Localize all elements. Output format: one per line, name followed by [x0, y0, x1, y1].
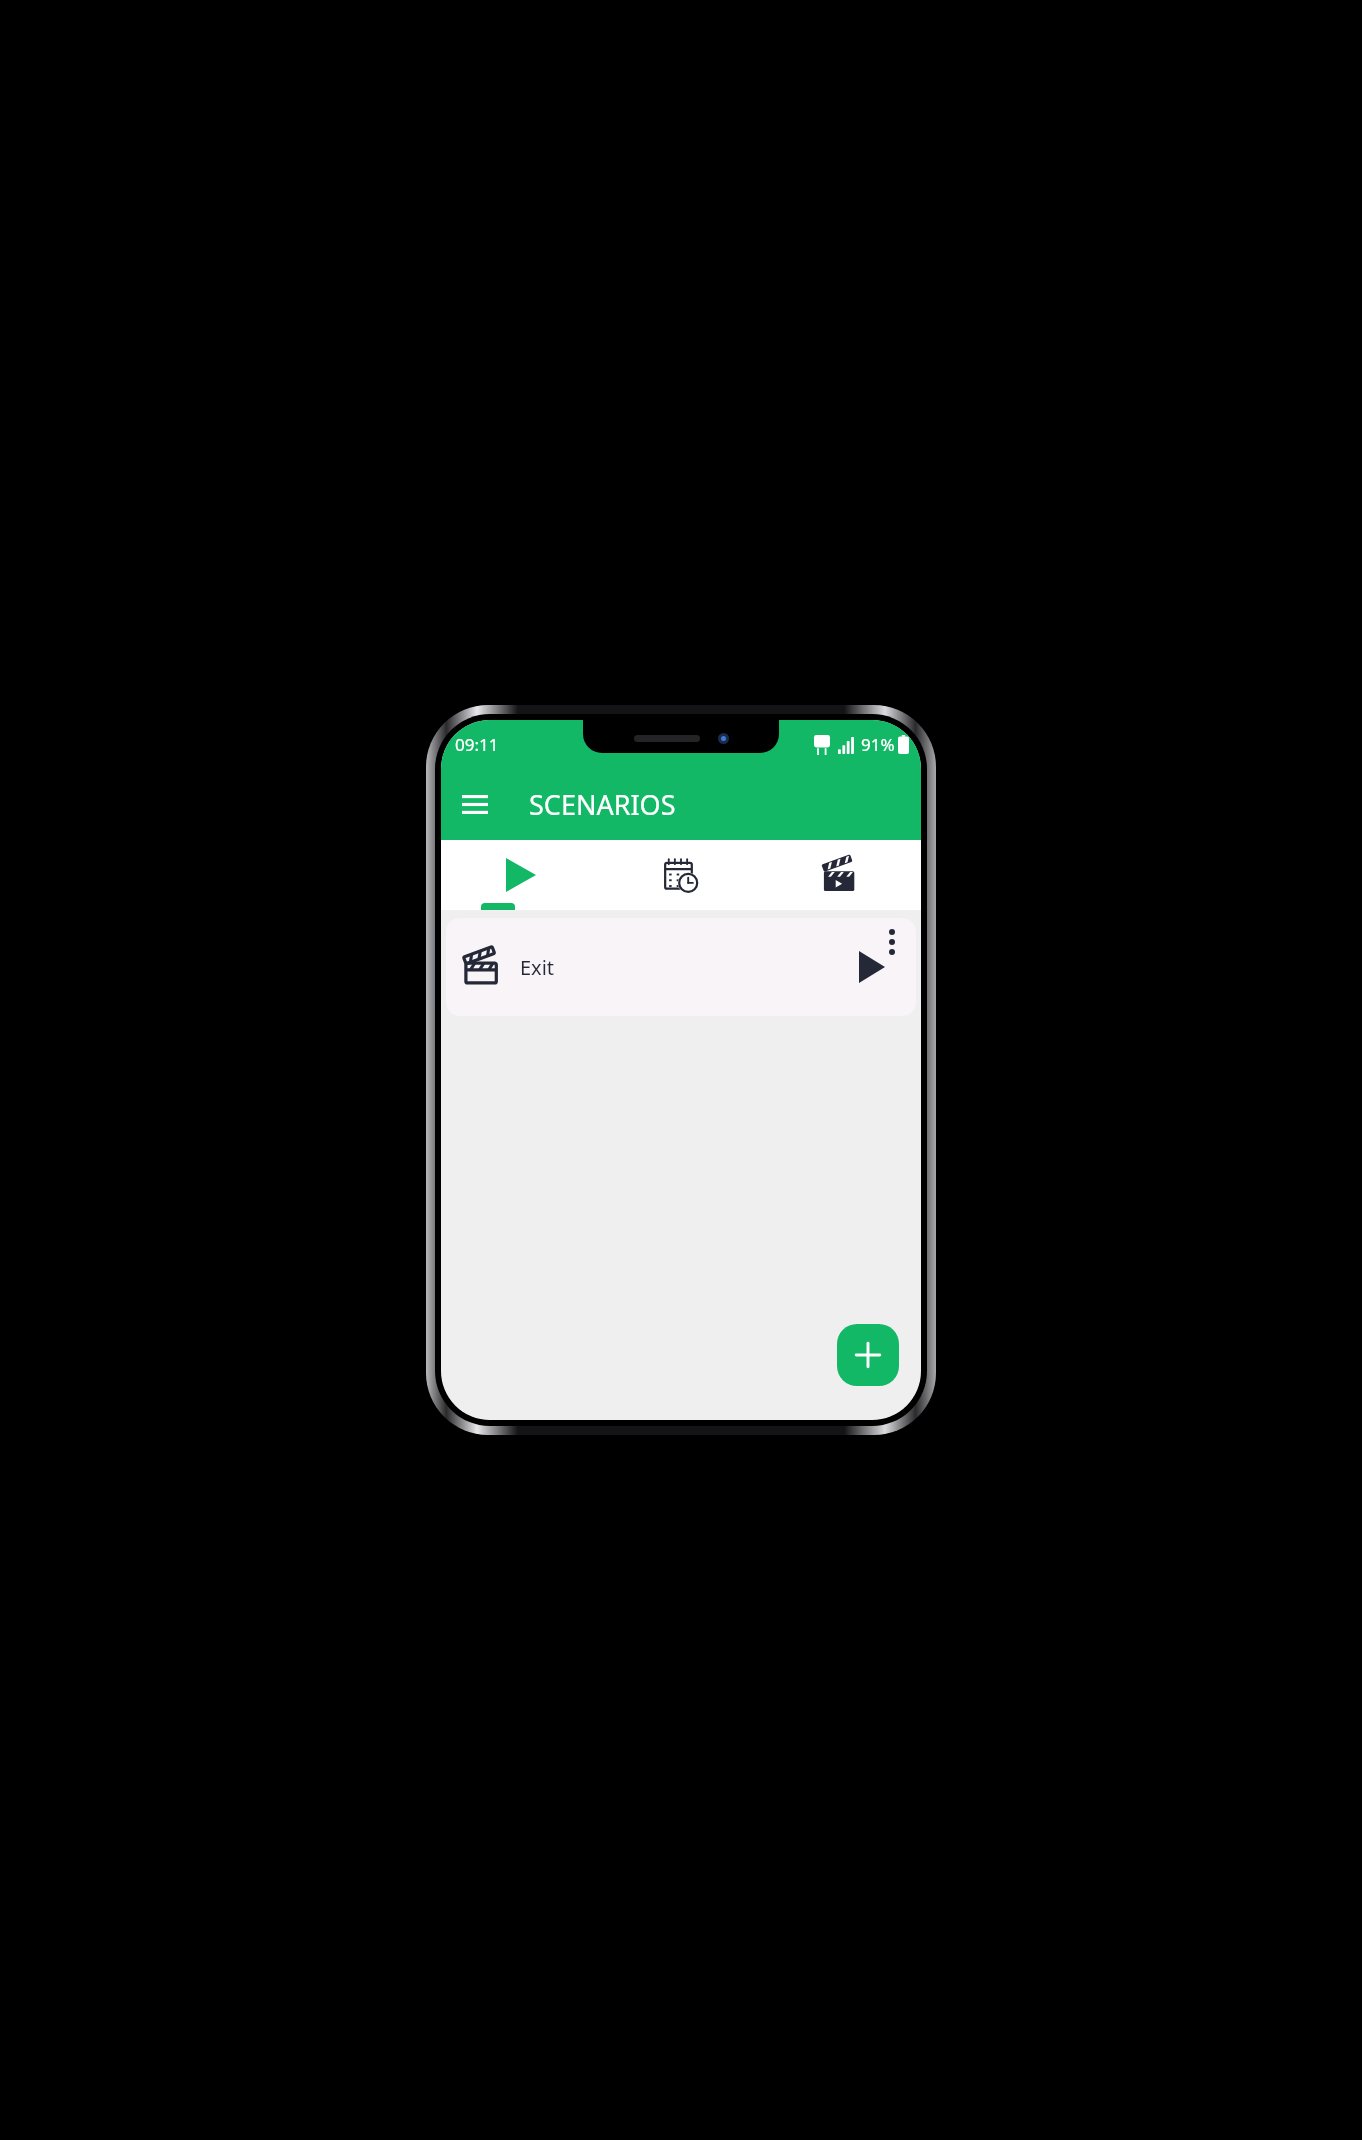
- button[interactable]: More options: [872, 922, 912, 962]
- button[interactable]: Play scenario Exit: [846, 941, 898, 993]
- staticText: 09:11: [455, 733, 499, 756]
- button[interactable]: Add scenario: [837, 1324, 899, 1386]
- staticText: SCENARIOS: [529, 786, 676, 823]
- button[interactable]: Run scenarios: [441, 840, 601, 910]
- staticText: Exit: [520, 954, 555, 981]
- button[interactable]: Open navigation menu: [449, 778, 501, 830]
- button[interactable]: Exit: [446, 918, 916, 1016]
- button[interactable]: Scheduled scenarios: [601, 840, 761, 910]
- button[interactable]: Scenario library: [761, 840, 921, 910]
- staticText: 91%: [861, 733, 895, 756]
